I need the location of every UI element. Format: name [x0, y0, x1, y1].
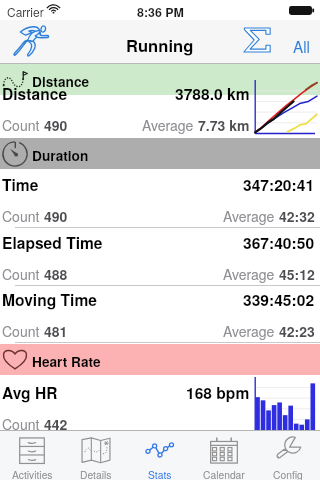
- staticText: 3788.0 km: [175, 82, 250, 104]
- staticText: Carrier: [7, 3, 44, 20]
- staticText: Running: [126, 33, 194, 57]
- button[interactable]: Details: [64, 431, 128, 480]
- staticText: Distance: [32, 72, 90, 92]
- staticText: Details: [80, 467, 112, 480]
- button[interactable]: Summary: [243, 28, 271, 52]
- button[interactable]: Activity type: [13, 24, 49, 58]
- staticText: Distance: [2, 82, 68, 104]
- staticText: 367:40:50: [243, 231, 315, 253]
- staticText: Average: [142, 115, 198, 135]
- staticText: Count: [2, 206, 44, 226]
- button[interactable]: Activities: [0, 431, 64, 480]
- button[interactable]: Avg HR: [0, 378, 320, 436]
- staticText: 442: [44, 414, 68, 434]
- button[interactable]: Config: [256, 431, 320, 480]
- staticText: 481: [44, 321, 68, 341]
- staticText: 7.73 km: [198, 115, 250, 135]
- staticText: Config: [273, 467, 303, 480]
- staticText: Count: [2, 115, 44, 135]
- button[interactable]: Moving Time: [0, 285, 320, 343]
- staticText: Heart Rate: [32, 352, 101, 372]
- staticText: Count: [2, 321, 44, 341]
- button[interactable]: Stats: [128, 431, 192, 480]
- button[interactable]: Elapsed Time: [0, 228, 320, 286]
- staticText: 168 bpm: [186, 381, 250, 403]
- staticText: Count: [2, 414, 44, 434]
- staticText: All: [293, 35, 310, 57]
- staticText: 8:36 PM: [137, 3, 184, 21]
- staticText: Stats: [148, 467, 172, 480]
- staticText: Duration: [32, 146, 89, 166]
- staticText: 490: [44, 115, 68, 135]
- staticText: 488: [44, 264, 68, 284]
- button[interactable]: Distance: [0, 64, 320, 95]
- button[interactable]: Heart Rate: [0, 344, 320, 375]
- staticText: 490: [44, 206, 68, 226]
- staticText: Elapsed Time: [2, 231, 103, 253]
- staticText: 42:23: [279, 321, 315, 341]
- staticText: Average: [223, 321, 279, 341]
- staticText: Moving Time: [2, 288, 97, 310]
- staticText: Average: [223, 264, 279, 284]
- button[interactable]: All: [286, 24, 318, 58]
- staticText: 42:32: [279, 206, 315, 226]
- button[interactable]: Distance: [0, 79, 320, 137]
- button[interactable]: Time: [0, 170, 320, 228]
- button[interactable]: Duration: [0, 138, 320, 169]
- staticText: Average: [223, 206, 279, 226]
- staticText: 339:45:02: [243, 288, 315, 310]
- staticText: Calendar: [203, 467, 245, 480]
- staticText: 45:12: [279, 264, 315, 284]
- staticText: 347:20:41: [243, 173, 315, 195]
- staticText: Count: [2, 264, 44, 284]
- staticText: Activities: [12, 467, 53, 480]
- staticText: Time: [2, 173, 39, 195]
- button[interactable]: Calendar: [192, 431, 256, 480]
- staticText: Avg HR: [2, 381, 58, 403]
